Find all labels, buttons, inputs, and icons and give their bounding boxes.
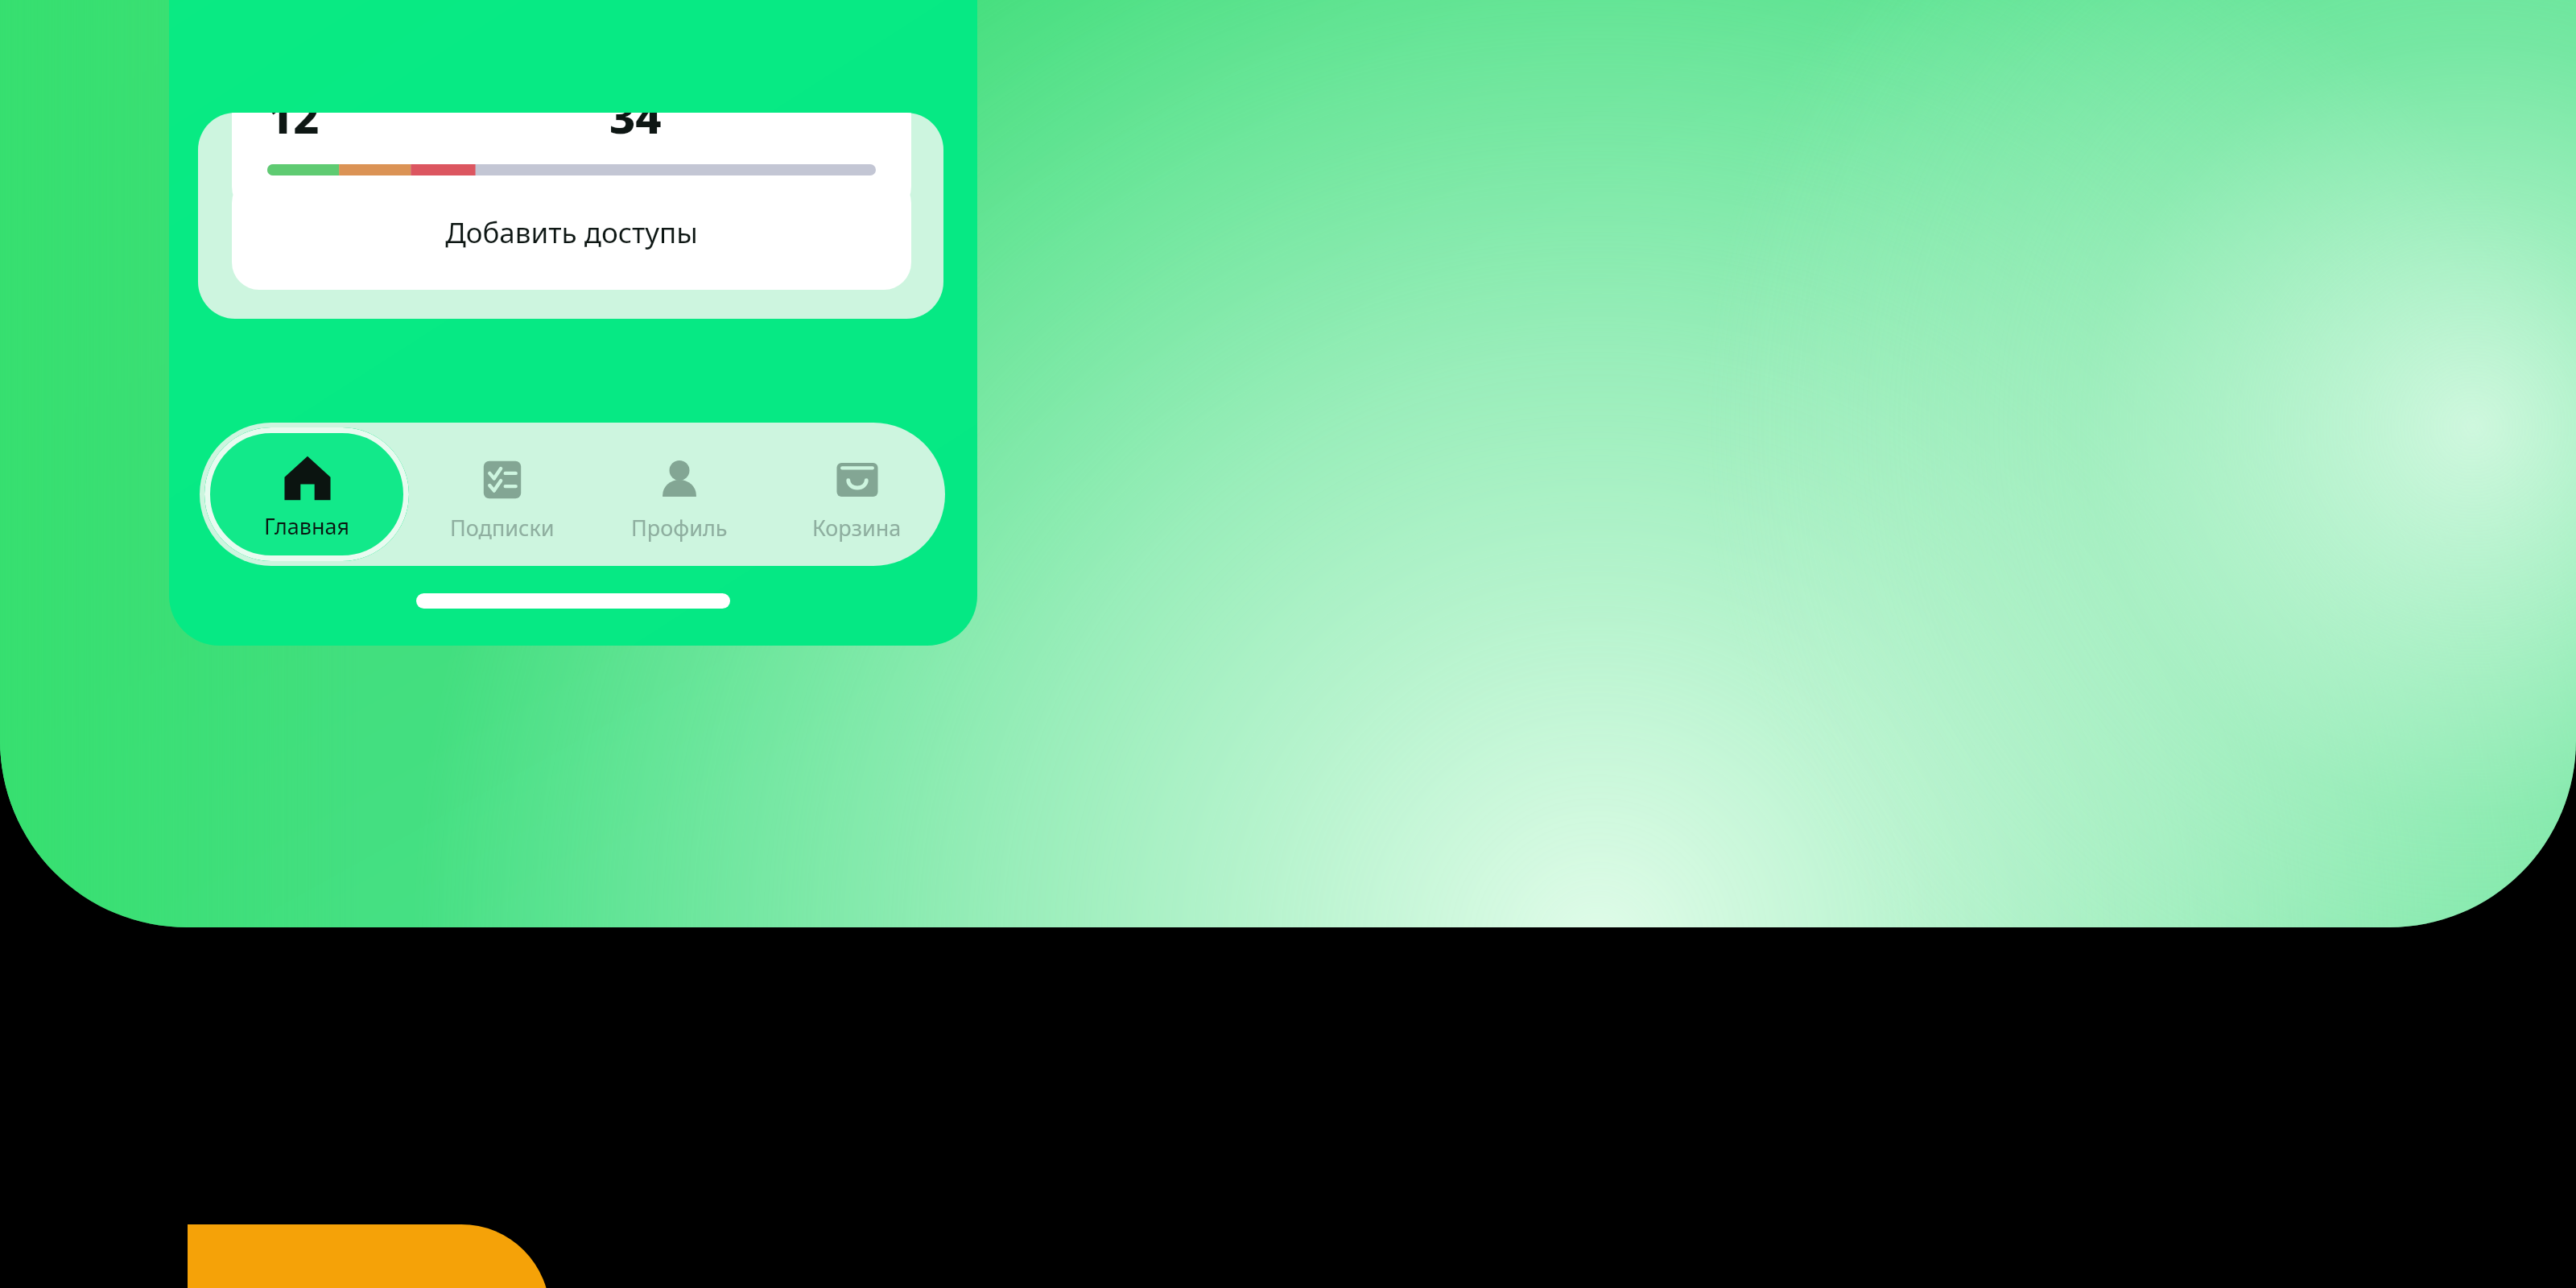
staticText: 12 <box>267 113 320 147</box>
staticText: Корзина <box>812 513 902 543</box>
button[interactable]: Подписки <box>414 423 591 566</box>
button[interactable]: Главная <box>204 427 409 561</box>
button[interactable]: Корзина <box>768 423 945 566</box>
staticText: Главная <box>264 511 350 541</box>
button[interactable]: Профиль <box>591 423 768 566</box>
staticText: Добавить доступы <box>445 213 698 252</box>
button[interactable]: Добавить доступы <box>232 175 911 290</box>
button[interactable]: 12 <box>232 113 911 214</box>
staticText: 34 <box>609 113 662 147</box>
staticText: Подписки <box>450 513 555 543</box>
staticText: Профиль <box>631 513 728 543</box>
